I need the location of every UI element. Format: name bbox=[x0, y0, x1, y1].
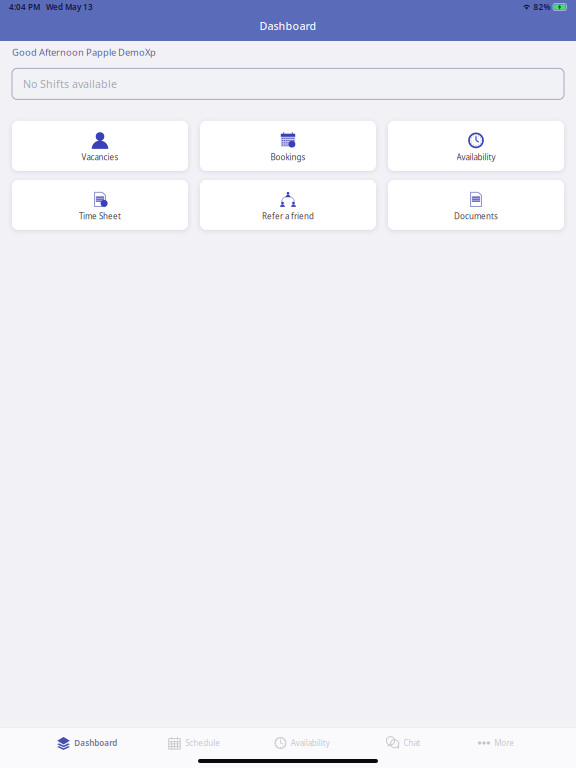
button[interactable]: Vacancies bbox=[12, 121, 188, 171]
staticText: Dashboard bbox=[74, 738, 117, 748]
staticText: Availability bbox=[291, 738, 330, 748]
staticText: 4:04 PM bbox=[9, 2, 40, 12]
staticText: Schedule bbox=[185, 738, 220, 748]
staticText: Chat bbox=[403, 738, 420, 748]
staticText: Bookings bbox=[270, 152, 305, 162]
button[interactable]: Time Sheet bbox=[12, 180, 188, 230]
staticText: Availability bbox=[456, 152, 495, 162]
staticText: Time Sheet bbox=[79, 211, 121, 221]
button[interactable]: Schedule bbox=[168, 730, 220, 756]
staticText: Good Afternoon Papple DemoXp bbox=[12, 46, 156, 58]
button[interactable]: More bbox=[478, 730, 514, 756]
button[interactable]: Bookings bbox=[200, 121, 376, 171]
staticText: Dashboard bbox=[259, 19, 316, 33]
button[interactable]: Refer a friend bbox=[200, 180, 376, 230]
staticText: Refer a friend bbox=[262, 211, 314, 221]
button[interactable]: Availability bbox=[274, 730, 330, 756]
staticText: No Shifts available bbox=[23, 77, 117, 91]
button[interactable]: Dashboard bbox=[57, 730, 117, 756]
staticText: More bbox=[494, 738, 514, 748]
staticText: Documents bbox=[454, 211, 498, 221]
button[interactable]: Documents bbox=[388, 180, 564, 230]
staticText: 82% bbox=[533, 2, 550, 12]
button[interactable]: Chat bbox=[385, 730, 420, 756]
button[interactable]: Availability bbox=[388, 121, 564, 171]
staticText: Wed May 13 bbox=[46, 2, 93, 12]
staticText: Vacancies bbox=[81, 152, 118, 162]
